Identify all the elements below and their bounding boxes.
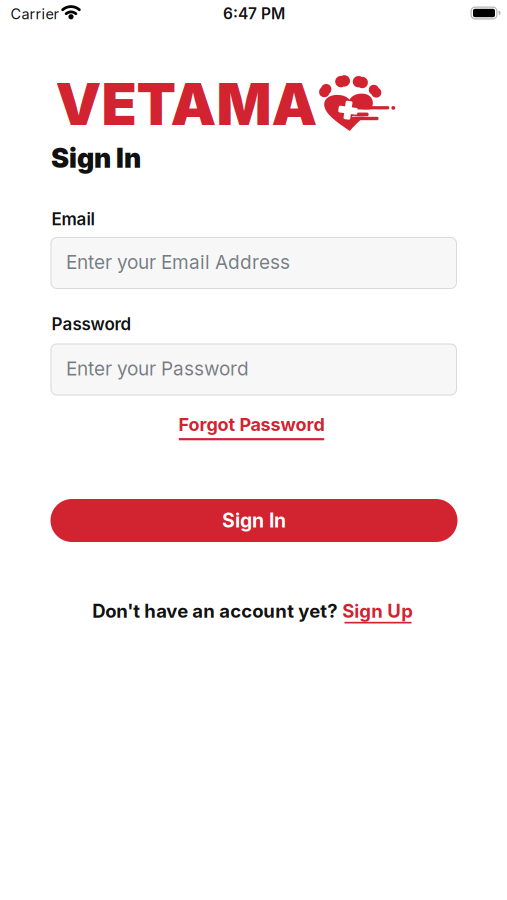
staticText: Don't have an account yet? — [92, 600, 337, 622]
staticText: Password — [51, 314, 131, 334]
button[interactable]: Sign In — [50, 499, 457, 542]
button[interactable]: Sign Up — [342, 600, 413, 622]
staticText: VETAMA — [55, 69, 317, 139]
button[interactable]: Enter your Email Address — [50, 237, 457, 289]
staticText: Forgot Password — [178, 414, 324, 435]
staticText: Sign In — [51, 142, 141, 174]
button[interactable]: Enter your Password — [50, 343, 457, 395]
staticText: Email — [51, 209, 94, 229]
staticText: 6:47 PM — [223, 4, 285, 23]
staticText: Enter your Email Address — [66, 250, 290, 273]
staticText: Sign Up — [342, 600, 413, 622]
staticText: Enter your Password — [66, 357, 249, 380]
staticText: Sign In — [222, 509, 286, 532]
button[interactable]: Forgot Password — [178, 414, 324, 435]
staticText: Carrier — [10, 5, 58, 23]
